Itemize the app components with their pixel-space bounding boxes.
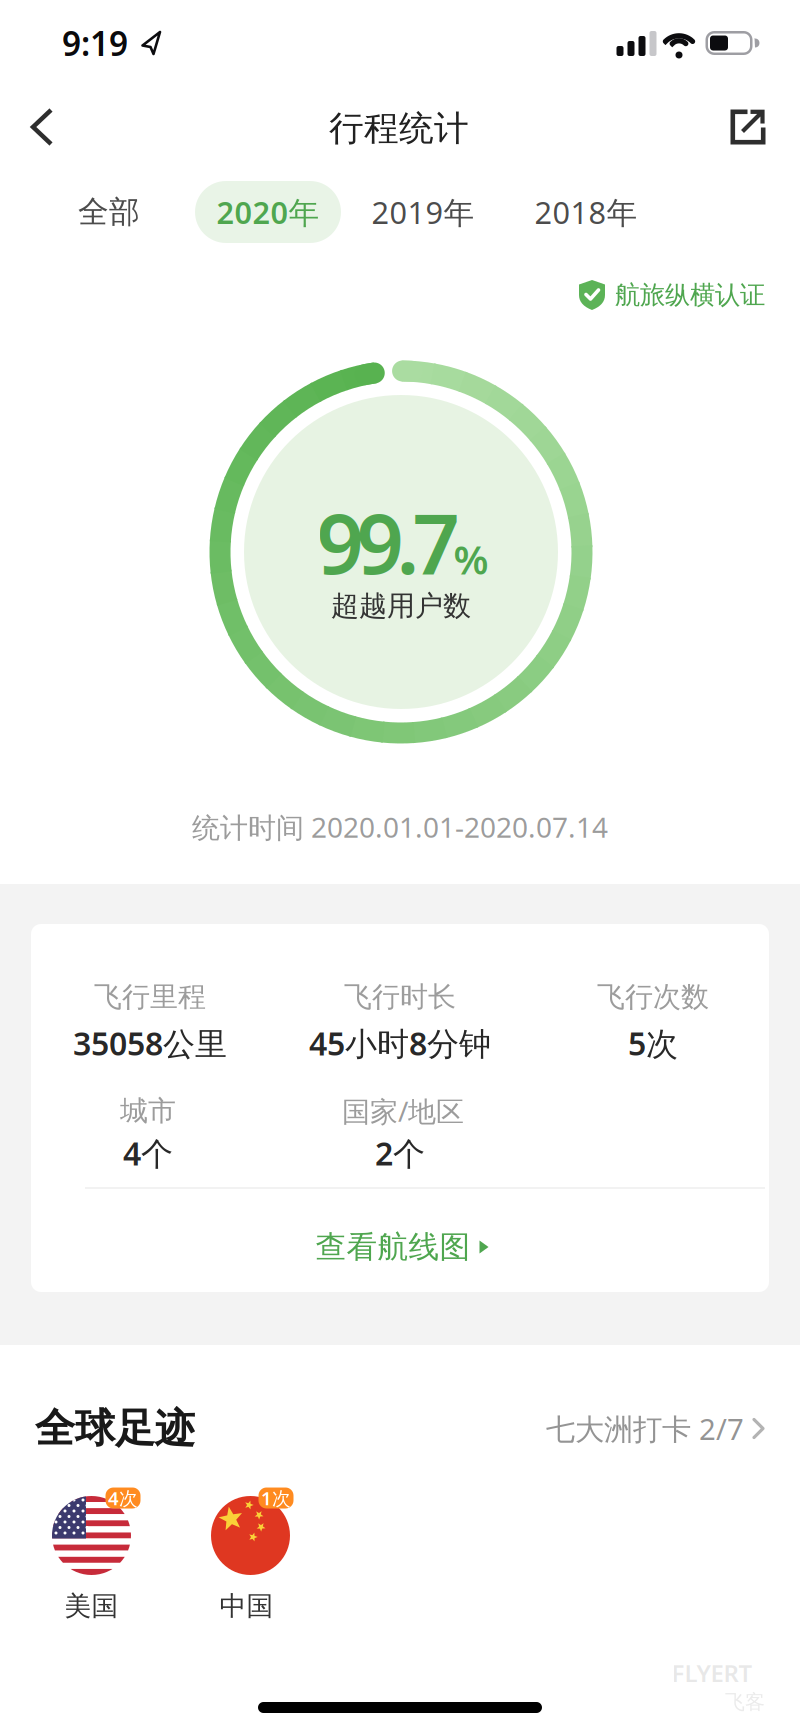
staticText: 全球足迹	[35, 1404, 195, 1453]
staticText: 行程统计	[329, 107, 469, 150]
button[interactable]: 2020年	[195, 181, 341, 243]
staticText: 5次	[628, 1022, 678, 1064]
staticText: 统计时间 2020.01.01-2020.07.14	[192, 808, 608, 846]
staticText: 2018年	[534, 192, 637, 232]
staticText: 99.7	[316, 487, 459, 597]
staticText: 9:19	[62, 21, 128, 65]
staticText: 飞行里程	[94, 980, 206, 1014]
staticText: 35058公里	[73, 1022, 227, 1064]
staticText: 4个	[123, 1132, 173, 1174]
button[interactable]: 分享	[730, 109, 765, 144]
staticText: 2019年	[371, 192, 474, 232]
button[interactable]: 全部	[78, 193, 140, 231]
staticText: 飞客	[725, 1690, 765, 1714]
staticText: 超越用户数	[331, 589, 471, 623]
staticText: 查看航线图	[315, 1228, 470, 1266]
button[interactable]: 2019年	[371, 192, 474, 232]
staticText: 4次	[108, 1486, 138, 1510]
staticText: 七大洲打卡 2/7	[546, 1409, 744, 1448]
staticText: 2020年	[216, 192, 319, 232]
staticText: FLYERT	[671, 1657, 752, 1689]
staticText: 全部	[78, 193, 140, 231]
staticText: 飞行次数	[597, 980, 709, 1014]
button[interactable]: 七大洲打卡 2/7	[546, 1409, 765, 1448]
staticText: 美国	[64, 1590, 118, 1622]
staticText: 飞行时长	[344, 980, 456, 1014]
button[interactable]: 返回	[29, 107, 55, 147]
button[interactable]: 中国	[211, 1496, 290, 1575]
staticText: 国家/地区	[342, 1092, 464, 1130]
staticText: %	[453, 532, 488, 585]
button[interactable]: 2018年	[534, 192, 637, 232]
staticText: 1次	[261, 1486, 291, 1510]
staticText: 航旅纵横认证	[615, 279, 765, 310]
staticText: 城市	[120, 1094, 176, 1128]
staticText: 45小时8分钟	[309, 1022, 491, 1064]
staticText: 2个	[375, 1132, 425, 1174]
button[interactable]: 查看航线图	[315, 1228, 490, 1266]
staticText: 中国	[219, 1590, 273, 1622]
button[interactable]: 美国	[52, 1496, 131, 1575]
